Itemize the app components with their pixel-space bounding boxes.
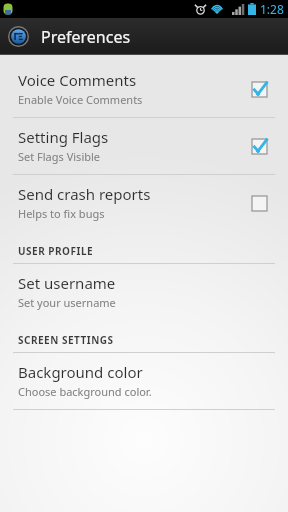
button[interactable]: Checked (244, 74, 274, 104)
staticText: Setting Flags (18, 127, 109, 147)
staticText: Helps to fix bugs (18, 206, 105, 221)
button[interactable]: Unchecked (244, 188, 274, 218)
staticText: Enable Voice Comments (18, 92, 143, 107)
staticText: Set Flags Visible (18, 149, 101, 164)
staticText: 1:28 (260, 1, 284, 17)
button[interactable]: Background color (0, 353, 288, 409)
staticText: SCREEN SETTINGS (18, 333, 114, 347)
button[interactable]: Send crash reports (0, 175, 288, 231)
staticText: Set username (18, 273, 116, 293)
button[interactable]: Setting Flags (0, 118, 288, 174)
staticText: Send crash reports (18, 184, 151, 204)
staticText: Choose background color. (18, 384, 152, 399)
button[interactable]: Checked (244, 131, 274, 161)
staticText: Set your username (18, 295, 116, 310)
button[interactable]: Voice Comments (0, 61, 288, 117)
staticText: USER PROFILE (18, 244, 94, 258)
button[interactable]: Set username (0, 264, 288, 320)
staticText: Background color (18, 362, 143, 382)
staticText: Voice Comments (18, 70, 137, 90)
staticText: Preferences (41, 26, 131, 48)
